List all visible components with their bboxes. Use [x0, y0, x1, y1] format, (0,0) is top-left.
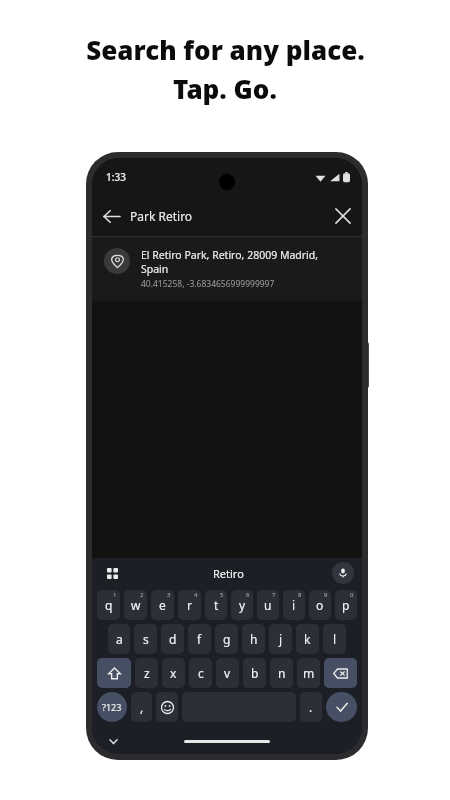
button[interactable]: d [161, 624, 184, 654]
button[interactable]: , [131, 692, 152, 722]
staticText: f [197, 631, 202, 647]
staticText: 2 [140, 591, 144, 599]
staticText: s [143, 631, 149, 647]
staticText: ?123 [102, 701, 122, 713]
staticText: l [333, 631, 337, 647]
button[interactable]: g [215, 624, 238, 654]
staticText: y [239, 597, 246, 613]
button[interactable]: a [108, 624, 130, 654]
button[interactable]: Toolbar [100, 561, 124, 585]
button[interactable]: y [231, 590, 253, 620]
staticText: p [342, 597, 350, 613]
button[interactable]: s [134, 624, 157, 654]
staticText: 6 [246, 591, 250, 599]
button[interactable]: Retiro [213, 566, 244, 581]
staticText: b [251, 665, 259, 681]
staticText: d [169, 631, 177, 647]
staticText: Spain [141, 262, 169, 276]
button[interactable]: Hide keyboard [104, 732, 122, 750]
button[interactable]: Emoji [156, 692, 178, 722]
staticText: g [223, 631, 231, 647]
button[interactable]: m [297, 658, 320, 688]
staticText: Tap. Go. [173, 71, 277, 106]
staticText: 1:33 [106, 170, 126, 184]
staticText: r [187, 597, 192, 613]
staticText: a [116, 631, 123, 647]
button[interactable]: Back [92, 197, 130, 235]
button[interactable]: ?123 [97, 692, 127, 722]
staticText: Search for any place. [86, 32, 365, 67]
button[interactable]: j [269, 624, 292, 654]
staticText: n [278, 665, 286, 681]
button[interactable]: l [323, 624, 346, 654]
button[interactable]: r [178, 590, 201, 620]
staticText: u [264, 597, 272, 613]
staticText: o [316, 597, 324, 613]
button[interactable]: n [270, 658, 293, 688]
staticText: h [250, 631, 258, 647]
staticText: 1 [113, 591, 117, 599]
button[interactable]: Clear [324, 197, 362, 235]
staticText: w [131, 597, 141, 613]
button[interactable]: . [300, 692, 322, 722]
staticText: 9 [324, 591, 328, 599]
staticText: k [304, 631, 311, 647]
button[interactable]: El Retiro Park, Retiro, 28009 Madrid, [92, 237, 362, 301]
staticText: 3 [167, 591, 171, 599]
staticText: e [159, 597, 166, 613]
staticText: 8 [298, 591, 302, 599]
button[interactable]: e [151, 590, 174, 620]
staticText: , [140, 699, 144, 715]
button[interactable]: o [309, 590, 331, 620]
staticText: q [105, 597, 113, 613]
staticText: 4 [194, 591, 198, 599]
staticText: c [198, 665, 204, 681]
staticText: v [224, 665, 231, 681]
staticText: El Retiro Park, Retiro, 28009 Madrid, [141, 248, 319, 262]
button[interactable]: u [257, 590, 279, 620]
staticText: Park Retiro [130, 208, 324, 224]
button[interactable]: t [205, 590, 227, 620]
button[interactable]: Shift [97, 658, 131, 688]
button[interactable]: Voice input [332, 562, 354, 584]
staticText: m [303, 665, 315, 681]
button[interactable]: w [124, 590, 147, 620]
button[interactable]: c [189, 658, 212, 688]
staticText: i [292, 597, 296, 613]
staticText: x [170, 665, 177, 681]
button[interactable]: k [296, 624, 319, 654]
staticText: 7 [272, 591, 276, 599]
button[interactable]: i [283, 590, 305, 620]
button[interactable]: f [188, 624, 211, 654]
button[interactable]: q [97, 590, 120, 620]
button[interactable]: p [335, 590, 357, 620]
button[interactable]: Backspace [324, 658, 357, 688]
staticText: 5 [220, 591, 224, 599]
staticText: t [214, 597, 219, 613]
staticText: 0 [350, 591, 354, 599]
button[interactable]: b [243, 658, 266, 688]
staticText: 40.415258, -3.6834656999999997 [141, 278, 275, 290]
button[interactable]: z [135, 658, 158, 688]
staticText: j [279, 631, 283, 647]
button[interactable]: h [242, 624, 265, 654]
staticText: . [309, 699, 313, 715]
staticText: z [144, 665, 150, 681]
button[interactable]: x [162, 658, 185, 688]
button[interactable]: v [216, 658, 239, 688]
button[interactable]: Enter [326, 692, 357, 722]
